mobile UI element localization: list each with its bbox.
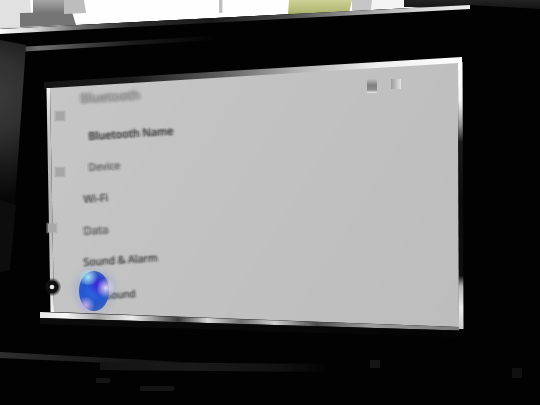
- button[interactable]: [0, 0, 540, 405]
